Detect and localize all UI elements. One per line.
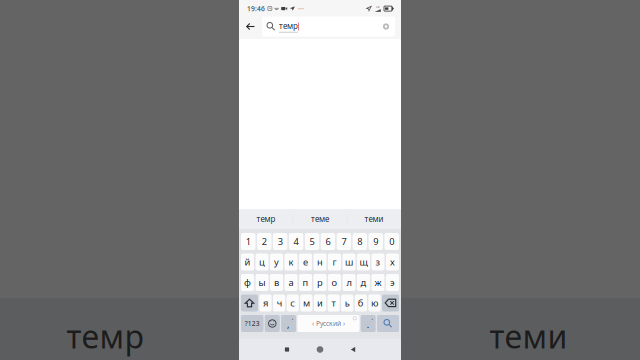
staticText: д	[360, 276, 366, 289]
staticText: ···	[298, 4, 304, 13]
staticText: •	[371, 316, 373, 323]
button[interactable]: о	[328, 274, 341, 291]
staticText: теми	[489, 315, 567, 357]
button[interactable]: 1	[241, 233, 255, 250]
button[interactable]: р	[313, 274, 327, 291]
button[interactable]: 5	[305, 233, 319, 250]
button[interactable]: п	[299, 274, 312, 291]
staticText: 19:46	[247, 4, 265, 13]
button[interactable]: Emoji	[265, 315, 280, 332]
button[interactable]: д	[357, 274, 370, 291]
button[interactable]: е	[299, 253, 312, 270]
staticText: ы	[258, 276, 265, 289]
button[interactable]: х	[386, 253, 399, 270]
staticText: ф	[244, 276, 251, 289]
staticText: з	[375, 256, 380, 268]
staticText: щ	[359, 256, 367, 268]
staticText: 9	[373, 235, 378, 248]
staticText: 2	[262, 235, 267, 248]
staticText: темр	[279, 21, 298, 31]
button[interactable]: 8	[353, 233, 367, 250]
button[interactable]: 0	[384, 233, 399, 250]
button[interactable]: н	[313, 253, 327, 270]
staticText: темр	[256, 214, 275, 224]
button[interactable]: с	[287, 294, 299, 311]
staticText: н	[317, 256, 323, 268]
button[interactable]: Space, Russian	[297, 315, 359, 332]
staticText: о	[331, 276, 337, 289]
button[interactable]: ы	[255, 274, 269, 291]
button[interactable]: •	[281, 315, 296, 332]
button[interactable]: Recent apps	[274, 339, 300, 360]
staticText: теми	[364, 214, 383, 224]
staticText: п	[302, 276, 308, 289]
staticText: ‹ Русский ›	[312, 319, 345, 328]
button[interactable]: ф	[241, 274, 254, 291]
button[interactable]: б	[355, 294, 367, 311]
button[interactable]: ж	[371, 274, 384, 291]
button[interactable]: 4	[289, 233, 303, 250]
button[interactable]: 6	[321, 233, 335, 250]
button[interactable]: ?123	[241, 315, 263, 332]
staticText: 6	[325, 235, 330, 248]
button[interactable]: к	[284, 253, 298, 270]
staticText: 1	[246, 235, 251, 248]
button[interactable]: теми	[347, 209, 401, 229]
button[interactable]: л	[342, 274, 355, 291]
staticText: к	[288, 256, 293, 268]
staticText: .	[367, 318, 370, 330]
button[interactable]: э	[386, 274, 399, 291]
staticText: 3	[278, 235, 283, 248]
button[interactable]: темр	[239, 209, 293, 229]
staticText: •	[292, 316, 294, 323]
button[interactable]: ь	[341, 294, 353, 311]
button[interactable]: •	[361, 315, 376, 332]
staticText: г	[332, 256, 336, 268]
staticText: р	[317, 276, 323, 289]
button[interactable]: 7	[337, 233, 351, 250]
button[interactable]: Back	[340, 339, 366, 360]
staticText: ь	[345, 297, 350, 309]
staticText: LTE	[376, 5, 379, 9]
button[interactable]: г	[328, 253, 341, 270]
button[interactable]: 2	[257, 233, 271, 250]
staticText: я	[263, 297, 268, 309]
staticText: у	[274, 256, 279, 268]
button[interactable]: и	[314, 294, 326, 311]
staticText: теме	[311, 214, 329, 224]
button[interactable]: у	[270, 253, 283, 270]
button[interactable]: з	[371, 253, 384, 270]
button[interactable]: ш	[342, 253, 355, 270]
button[interactable]: теме	[293, 209, 347, 229]
staticText: ю	[371, 297, 378, 309]
staticText: в	[274, 276, 279, 289]
button[interactable]: а	[284, 274, 298, 291]
staticText: с	[290, 297, 295, 309]
button[interactable]: щ	[357, 253, 370, 270]
staticText: б	[358, 297, 364, 309]
button[interactable]: Search	[377, 315, 399, 332]
staticText: л	[346, 276, 351, 289]
button[interactable]: ч	[273, 294, 285, 311]
button[interactable]: ю	[368, 294, 381, 311]
button[interactable]: Shift	[241, 294, 258, 311]
staticText: е	[303, 256, 308, 268]
staticText: ч	[277, 297, 282, 309]
staticText: 7	[341, 235, 346, 248]
button[interactable]: й	[241, 253, 254, 270]
button[interactable]: т	[327, 294, 340, 311]
staticText: ж	[374, 276, 381, 289]
button[interactable]: Backspace	[382, 294, 399, 311]
staticText: ?123	[245, 319, 260, 328]
button[interactable]: 9	[368, 233, 383, 250]
button[interactable]: в	[270, 274, 283, 291]
staticText: э	[390, 276, 395, 289]
button[interactable]: я	[259, 294, 272, 311]
button[interactable]: Back	[239, 14, 262, 38]
button[interactable]: Home	[307, 339, 333, 360]
staticText: и	[317, 297, 323, 309]
button[interactable]: м	[300, 294, 312, 311]
button[interactable]: 3	[273, 233, 287, 250]
button[interactable]: ц	[255, 253, 269, 270]
staticText: 5	[309, 235, 314, 248]
